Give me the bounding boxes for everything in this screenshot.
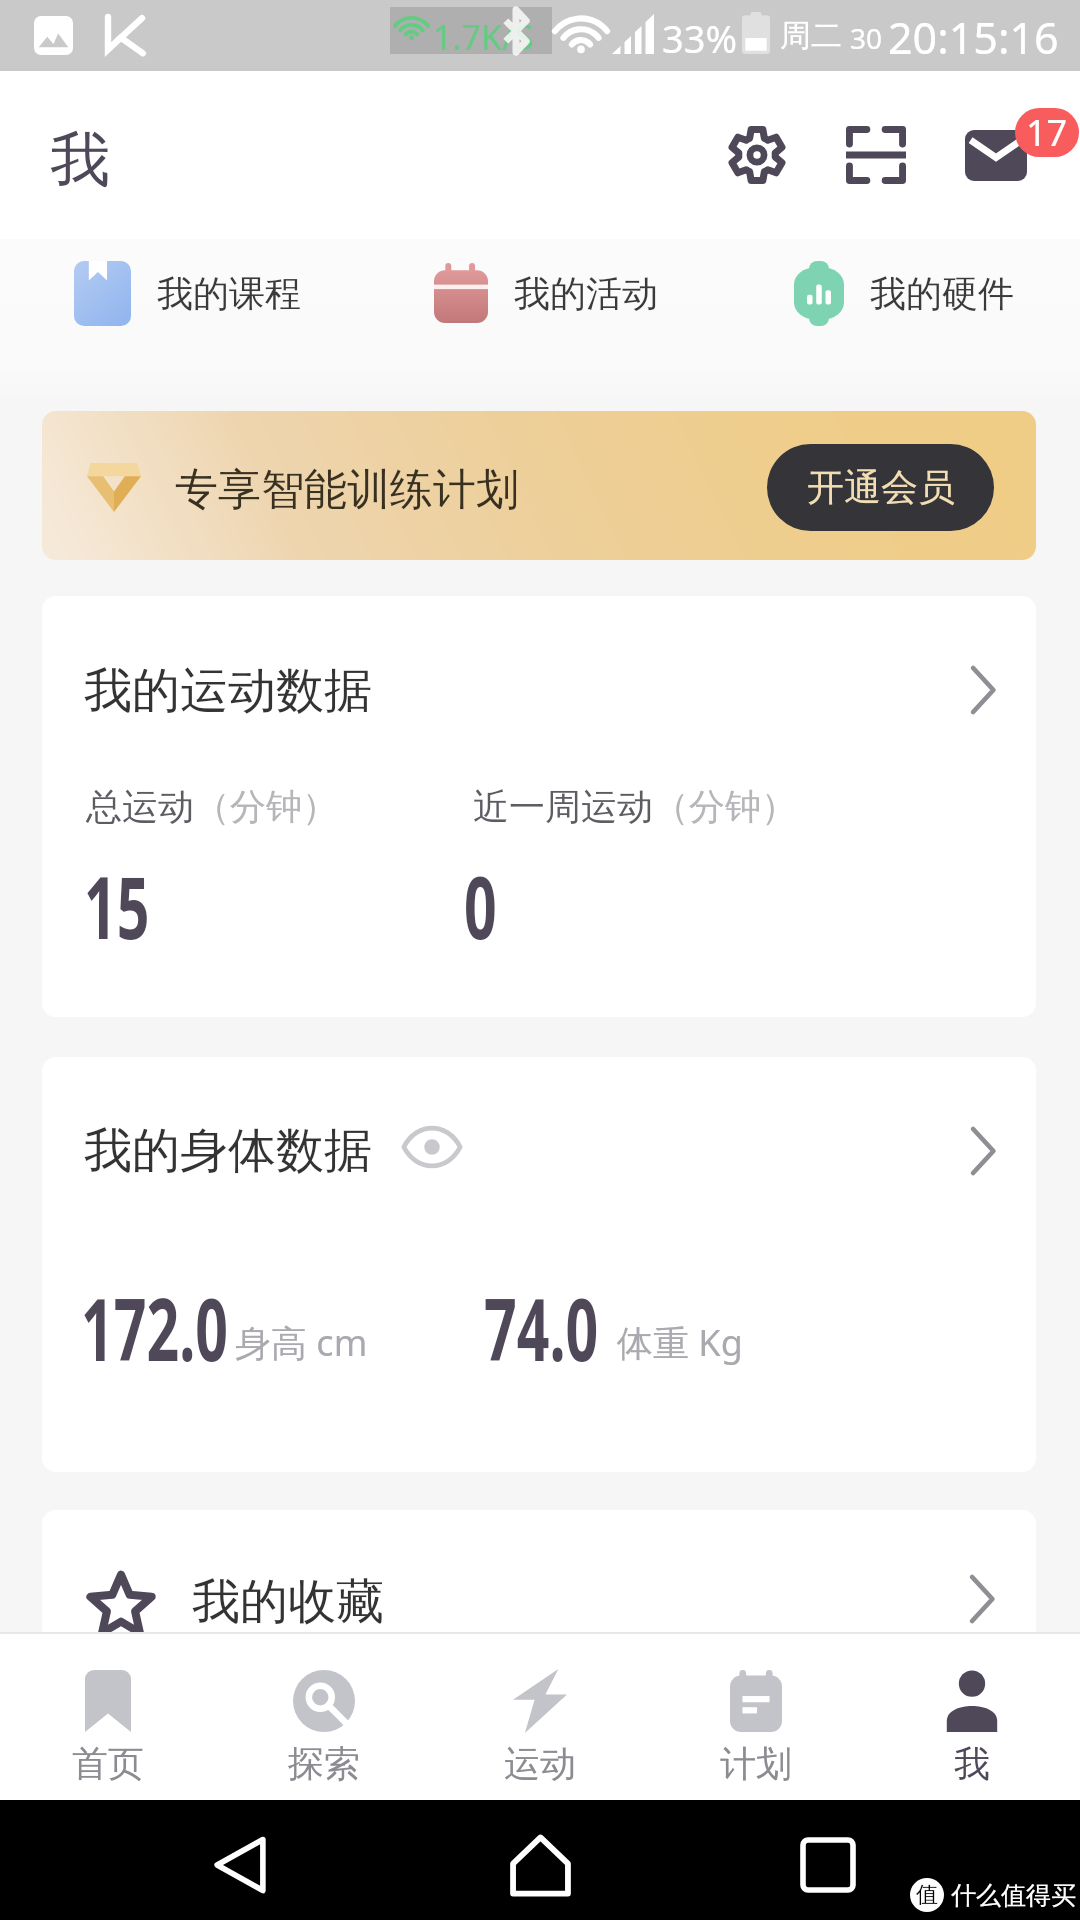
button[interactable]: 探索 [216,1634,432,1800]
staticText: 计划 [720,1741,792,1786]
staticText: 总运动 [86,784,194,829]
staticText: 我的收藏 [192,1572,384,1632]
button[interactable]: 计划 [648,1634,864,1800]
staticText: 20:15:16 [888,8,1059,67]
staticText: （分钟） [194,784,338,829]
button[interactable]: 我的活动 [434,243,720,343]
button[interactable]: 专享智能训练计划 [42,411,1036,560]
staticText: 我 [50,122,110,198]
staticText: 体重 Kg [617,1318,743,1367]
staticText: 运动 [504,1741,576,1786]
button[interactable]: Messages [936,95,1056,215]
staticText: 开通会员 [807,464,955,511]
staticText: 我 [954,1741,990,1786]
button[interactable]: 我的收藏 [42,1510,1036,1710]
button[interactable]: 首页 [0,1634,216,1800]
button[interactable]: Home [500,1825,580,1905]
button[interactable]: 运动 [432,1634,648,1800]
staticText: 专享智能训练计划 [175,463,519,517]
staticText: 30 [850,19,883,57]
staticText: （分钟） [653,784,797,829]
button[interactable]: Recent apps [788,1825,868,1905]
staticText: 探索 [288,1741,360,1786]
button[interactable]: 我的运动数据 [42,596,1036,1017]
staticText: 17 [1026,108,1068,157]
staticText: 我的活动 [514,271,658,316]
button[interactable]: 我的身体数据 [42,1057,1036,1472]
staticText: 什么值得买 [951,1880,1076,1911]
button[interactable]: 我的课程 [74,243,360,343]
staticText: 首页 [72,1741,144,1786]
staticText: 74.0 [484,1269,598,1386]
staticText: 我的硬件 [870,271,1014,316]
staticText: 33% [662,12,738,64]
staticText: 周二 [780,16,842,55]
staticText: 我的课程 [157,271,301,316]
button[interactable]: 开通会员 [767,444,994,531]
staticText: 身高 cm [235,1318,368,1367]
button[interactable]: Scan QR code [816,95,936,215]
staticText: 1.7K/S [433,14,534,60]
staticText: 0 [464,847,497,964]
staticText: 近一周运动 [473,784,653,829]
button[interactable]: 我的硬件 [794,243,1080,343]
button[interactable]: Settings [697,95,817,215]
staticText: 15 [84,847,150,964]
staticText: 172.0 [81,1269,228,1386]
staticText: 值 [916,1881,938,1909]
staticText: 我的运动数据 [84,661,372,721]
button[interactable]: 我 [864,1634,1080,1800]
button[interactable]: Back [200,1825,280,1905]
staticText: 我的身体数据 [84,1121,372,1181]
